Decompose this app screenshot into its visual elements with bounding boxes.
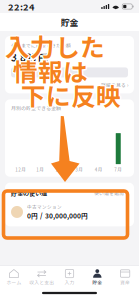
staticText: 情報は <box>12 53 87 89</box>
staticText: 入力した <box>6 29 106 65</box>
staticText: 入力した <box>4 27 104 63</box>
staticText: 3月 <box>75 166 83 173</box>
staticText: 下に反映 <box>22 76 122 112</box>
staticText: 22:24 <box>8 0 35 13</box>
button[interactable]: 使い道を追加 + <box>94 190 128 197</box>
staticText: 下に反映 <box>21 77 121 113</box>
staticText: 1月 <box>36 166 44 173</box>
staticText: 入力した <box>6 27 106 63</box>
button[interactable]: ホーム <box>0 269 28 286</box>
staticText: 下に反映 <box>21 78 121 114</box>
button[interactable]: 詳細を見る › <box>101 81 128 88</box>
staticText: 下に反映 <box>20 77 120 113</box>
staticText: 下に反映 <box>22 78 122 114</box>
staticText: 3,827円 <box>11 50 48 64</box>
staticText: 情報は <box>14 52 89 88</box>
staticText: 下に反映 <box>20 76 120 112</box>
button[interactable]: 入力 <box>56 269 83 286</box>
staticText: 下に反映 <box>22 77 122 113</box>
staticText: 情報は <box>14 53 89 89</box>
staticText: 7月 <box>114 166 122 173</box>
button[interactable]: 資産 <box>111 269 139 286</box>
staticText: 情報は <box>14 54 89 90</box>
staticText: 使い道を追加 + <box>94 190 128 197</box>
staticText: 入力した <box>5 28 105 64</box>
staticText: 情報は <box>13 54 88 90</box>
staticText: 12月 <box>15 166 26 173</box>
button[interactable]: 中古マンション <box>11 204 128 220</box>
staticText: 下に反映 <box>21 76 121 111</box>
staticText: 入力した <box>5 29 105 65</box>
staticText: 情報は <box>12 54 87 90</box>
staticText: 下に反映 <box>20 78 120 114</box>
staticText: 4月 <box>95 166 103 173</box>
staticText: 0円 / 30,000,000円 <box>27 211 88 220</box>
staticText: 入力した <box>4 28 104 64</box>
staticText: 入力した <box>5 27 105 62</box>
staticText: 今日までに貯金できた金額 <box>11 42 71 49</box>
staticText: 情報は <box>12 52 87 88</box>
staticText: 資産 <box>120 279 130 286</box>
staticText: 貯金 <box>92 279 102 286</box>
staticText: 情報は <box>13 53 88 89</box>
staticText: 月別の貯金できる金額 <box>11 104 61 112</box>
staticText: ホーム <box>6 279 21 286</box>
button[interactable]: 収入と支出 <box>28 269 56 286</box>
staticText: 入力した <box>4 29 104 65</box>
staticText: 情報は <box>13 52 88 87</box>
staticText: 2月 <box>56 166 64 173</box>
staticText: 中古マンション <box>27 204 62 210</box>
staticText: 貯金の使い道 <box>11 189 47 198</box>
staticText: 入力 <box>64 279 74 286</box>
button[interactable]: 貯金 <box>83 269 111 286</box>
staticText: 詳細を見る › <box>101 81 128 88</box>
staticText: 収入と支出 <box>29 279 54 286</box>
staticText: 入力した <box>6 28 106 64</box>
staticText: 貯金 <box>60 16 78 28</box>
